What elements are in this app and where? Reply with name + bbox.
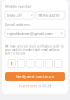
button[interactable]: Resend code bbox=[5, 83, 65, 89]
staticText: India +91 bbox=[7, 12, 22, 18]
button[interactable]: India +91 bbox=[5, 11, 34, 19]
button[interactable]: Verify and continue bbox=[5, 72, 65, 81]
staticText: Email address bbox=[5, 22, 30, 27]
staticText: We have sent a 6 digit verification code… bbox=[5, 45, 64, 55]
staticText: 98765 43210 bbox=[38, 12, 59, 18]
staticText: Resend code bbox=[18, 84, 37, 88]
staticText: v bbox=[31, 13, 32, 17]
button[interactable]: rajeshkumar@gmail.com bbox=[5, 29, 65, 38]
staticText: rajeshkumar@gmail.com bbox=[7, 31, 53, 36]
staticText: in 00:28 bbox=[38, 84, 51, 88]
button[interactable]: 98765 43210 bbox=[36, 11, 65, 19]
staticText: Mobile number bbox=[5, 4, 32, 9]
staticText: Verify and continue bbox=[16, 74, 54, 79]
